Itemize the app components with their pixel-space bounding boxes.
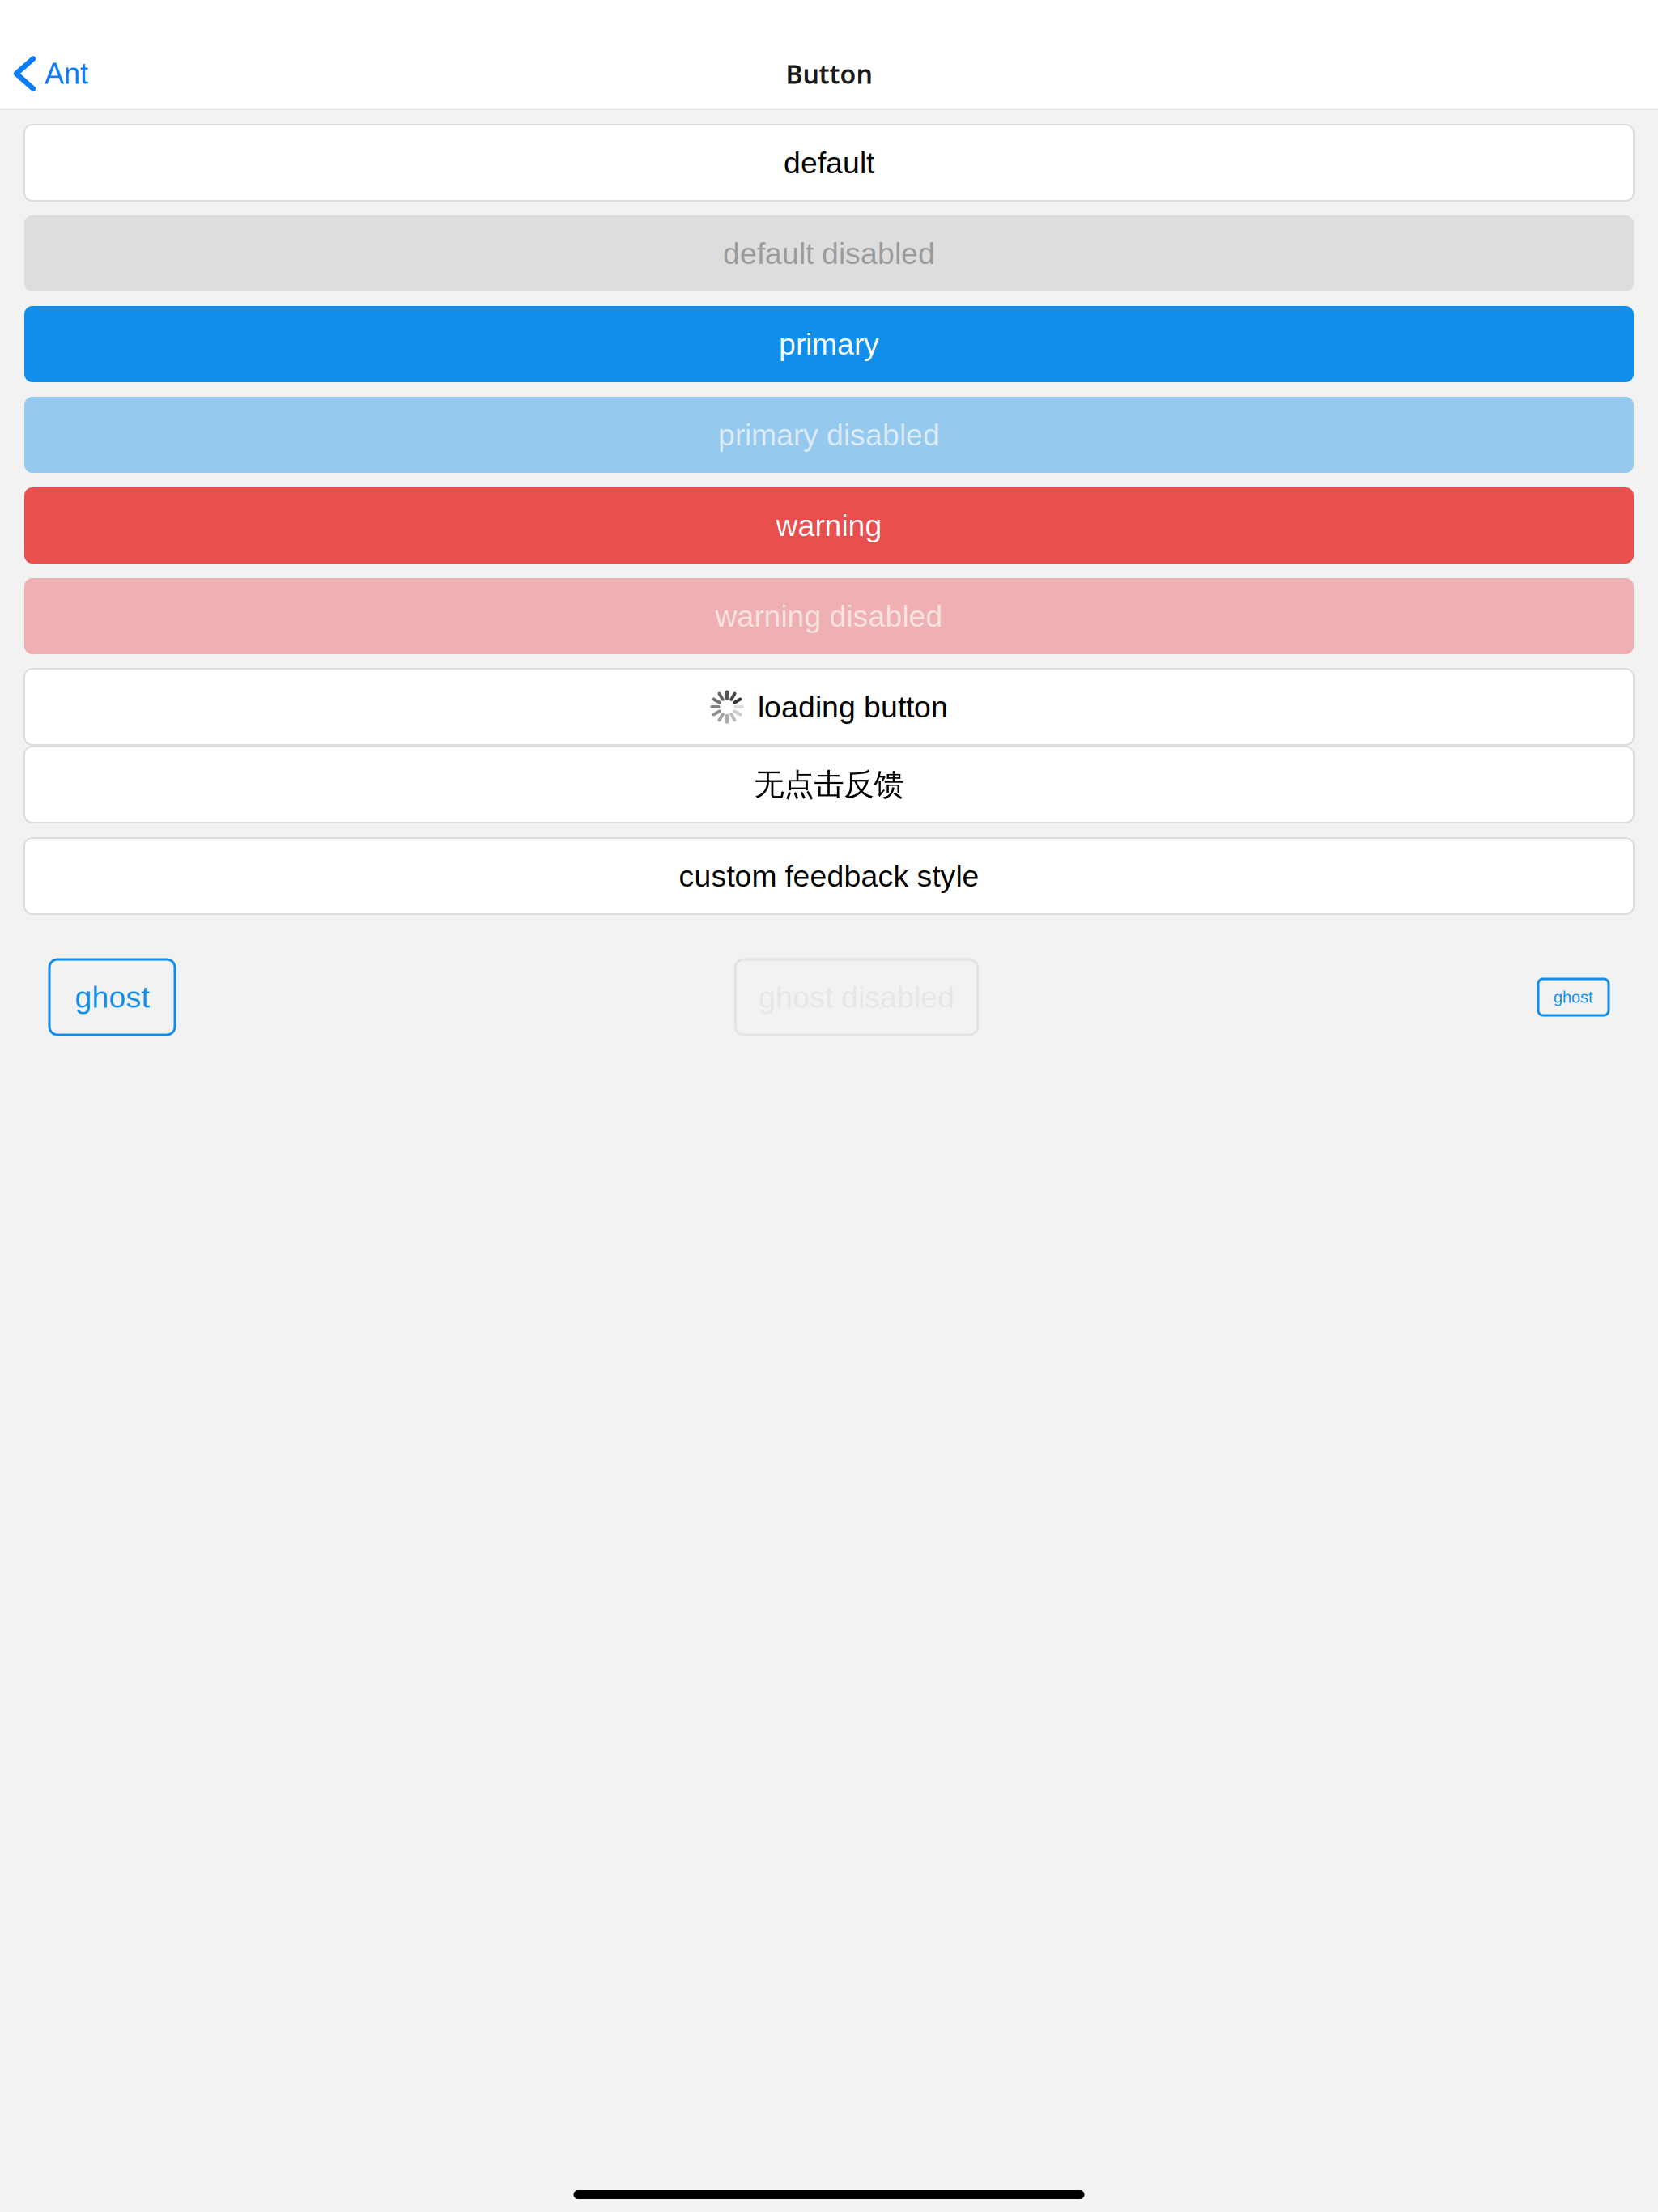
staticText: warning disabled — [715, 599, 943, 633]
button[interactable]: ghost disabled — [735, 959, 978, 1035]
staticText: ghost disabled — [759, 980, 954, 1014]
staticText: custom feedback style — [679, 859, 979, 893]
button[interactable]: ghost — [1538, 979, 1609, 1015]
button[interactable]: 无点击反馈 — [24, 747, 1634, 823]
staticText: default — [784, 146, 874, 180]
button[interactable]: loading button — [24, 669, 1634, 745]
staticText: default disabled — [723, 237, 935, 270]
staticText: ghost — [75, 980, 149, 1014]
staticText: Button — [786, 56, 872, 91]
button[interactable]: warning — [24, 487, 1634, 564]
button[interactable]: default disabled — [24, 215, 1634, 291]
staticText: loading button — [758, 690, 948, 724]
staticText: warning — [776, 509, 882, 542]
button[interactable]: default — [24, 125, 1634, 201]
staticText: primary — [779, 327, 879, 361]
button[interactable]: custom feedback style — [24, 838, 1634, 914]
button[interactable]: warning disabled — [24, 578, 1634, 654]
button[interactable]: ghost — [49, 959, 175, 1035]
button[interactable]: primary disabled — [24, 397, 1634, 473]
button[interactable]: Ant — [0, 37, 106, 110]
staticText: primary disabled — [718, 418, 940, 452]
staticText: 无点击反馈 — [754, 766, 904, 804]
button[interactable]: primary — [24, 306, 1634, 382]
staticText: ghost — [1554, 988, 1593, 1006]
staticText: Ant — [45, 57, 88, 90]
